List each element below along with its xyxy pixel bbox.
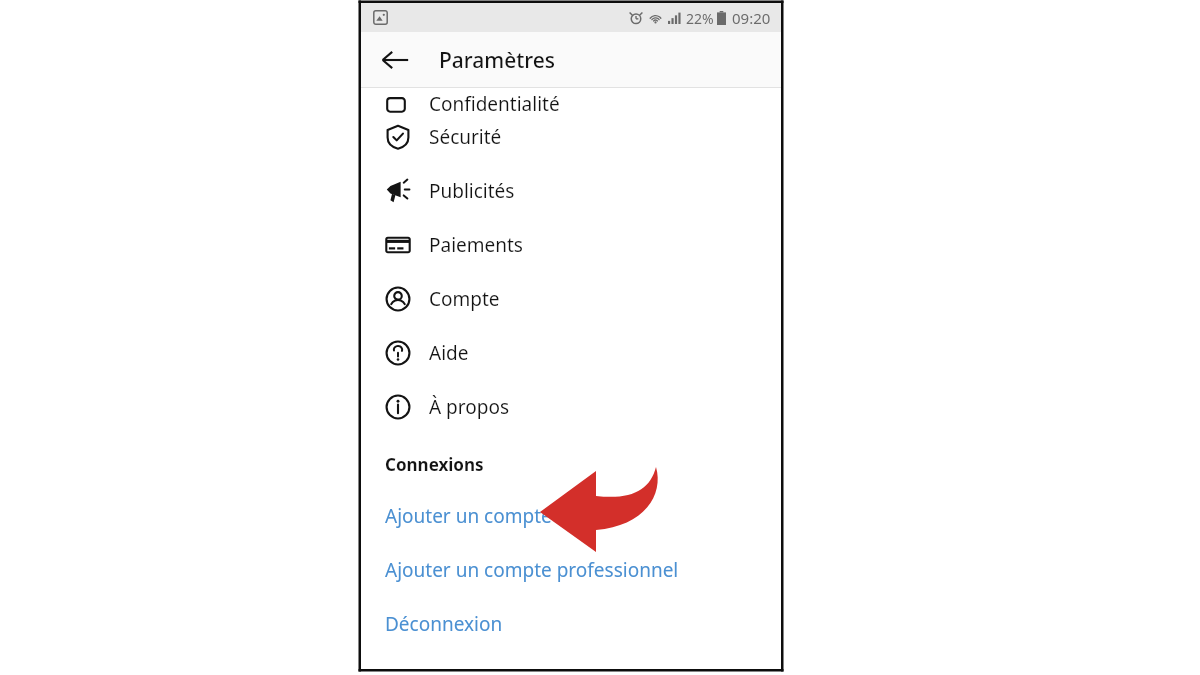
button[interactable]: Publicités: [361, 164, 781, 218]
button[interactable]: Déconnexion: [361, 611, 781, 637]
button[interactable]: Paiements: [361, 218, 781, 272]
button[interactable]: Sécurité: [361, 110, 781, 164]
staticText: Compte: [429, 286, 500, 312]
staticText: Ajouter un compte: [385, 503, 552, 529]
staticText: À propos: [429, 394, 510, 420]
staticText: 09:20: [732, 8, 771, 28]
staticText: Confidentialité: [429, 91, 560, 113]
button[interactable]: Compte: [361, 272, 781, 326]
staticText: Paramètres: [439, 46, 556, 75]
staticText: 22%: [686, 9, 714, 28]
staticText: Ajouter un compte professionnel: [385, 557, 679, 583]
button[interactable]: Aide: [361, 326, 781, 380]
staticText: Publicités: [429, 178, 515, 204]
button[interactable]: Ajouter un compte professionnel: [361, 557, 781, 583]
button[interactable]: Retour: [373, 38, 417, 82]
staticText: Sécurité: [429, 124, 502, 150]
staticText: Aide: [429, 340, 469, 366]
staticText: Déconnexion: [385, 611, 503, 637]
staticText: Connexions: [385, 453, 484, 476]
button[interactable]: À propos: [361, 380, 781, 434]
button[interactable]: Confidentialité: [361, 88, 781, 110]
staticText: Paiements: [429, 232, 523, 258]
button[interactable]: Ajouter un compte: [361, 503, 781, 529]
